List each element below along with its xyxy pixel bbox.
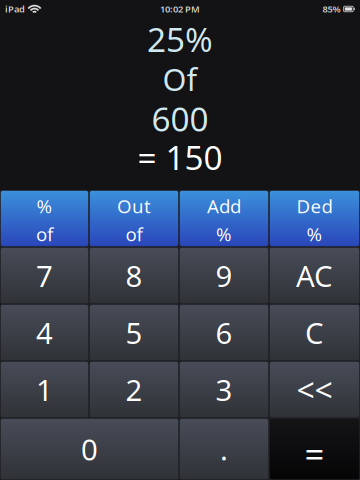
staticText: % — [36, 194, 52, 218]
staticText: of — [36, 222, 53, 246]
staticText: 7 — [36, 256, 53, 295]
staticText: 1 — [36, 370, 53, 409]
staticText: 2 — [125, 370, 142, 409]
button[interactable]: 6 — [179, 304, 269, 361]
staticText: 9 — [215, 256, 232, 295]
staticText: Out — [117, 194, 151, 218]
staticText: C — [305, 313, 324, 352]
button[interactable]: 1 — [0, 361, 89, 418]
staticText: % — [306, 222, 322, 246]
staticText: << — [296, 368, 332, 411]
button[interactable]: Ded — [269, 190, 360, 247]
button[interactable]: 7 — [0, 247, 89, 304]
staticText: Of — [162, 59, 197, 99]
staticText: = 150 — [137, 135, 222, 179]
button[interactable]: C — [269, 304, 360, 361]
button[interactable]: << — [269, 361, 360, 418]
staticText: 0 — [81, 429, 98, 468]
staticText: 10:02 PM — [160, 3, 200, 15]
button[interactable]: = — [269, 418, 360, 480]
staticText: 6 — [215, 313, 232, 352]
button[interactable]: 3 — [179, 361, 269, 418]
staticText: 8 — [125, 256, 142, 295]
button[interactable]: 4 — [0, 304, 89, 361]
button[interactable]: Out — [89, 190, 179, 247]
button[interactable]: Add — [179, 190, 269, 247]
button[interactable]: 8 — [89, 247, 179, 304]
staticText: 25% — [147, 17, 213, 61]
staticText: Add — [207, 194, 241, 218]
button[interactable]: 2 — [89, 361, 179, 418]
staticText: 600 — [151, 96, 208, 141]
button[interactable]: 9 — [179, 247, 269, 304]
staticText: iPad — [5, 3, 25, 15]
button[interactable]: 0 — [0, 418, 179, 480]
staticText: 3 — [215, 370, 232, 409]
staticText: 85% — [322, 3, 340, 15]
staticText: . — [220, 429, 228, 468]
staticText: of — [125, 222, 142, 246]
button[interactable]: 5 — [89, 304, 179, 361]
staticText: 4 — [36, 313, 53, 352]
button[interactable]: AC — [269, 247, 360, 304]
staticText: Ded — [296, 194, 332, 218]
button[interactable]: . — [179, 418, 269, 480]
staticText: = — [304, 431, 324, 477]
staticText: AC — [296, 256, 333, 295]
staticText: % — [216, 222, 232, 246]
staticText: 5 — [125, 313, 142, 352]
button[interactable]: % — [0, 190, 89, 247]
